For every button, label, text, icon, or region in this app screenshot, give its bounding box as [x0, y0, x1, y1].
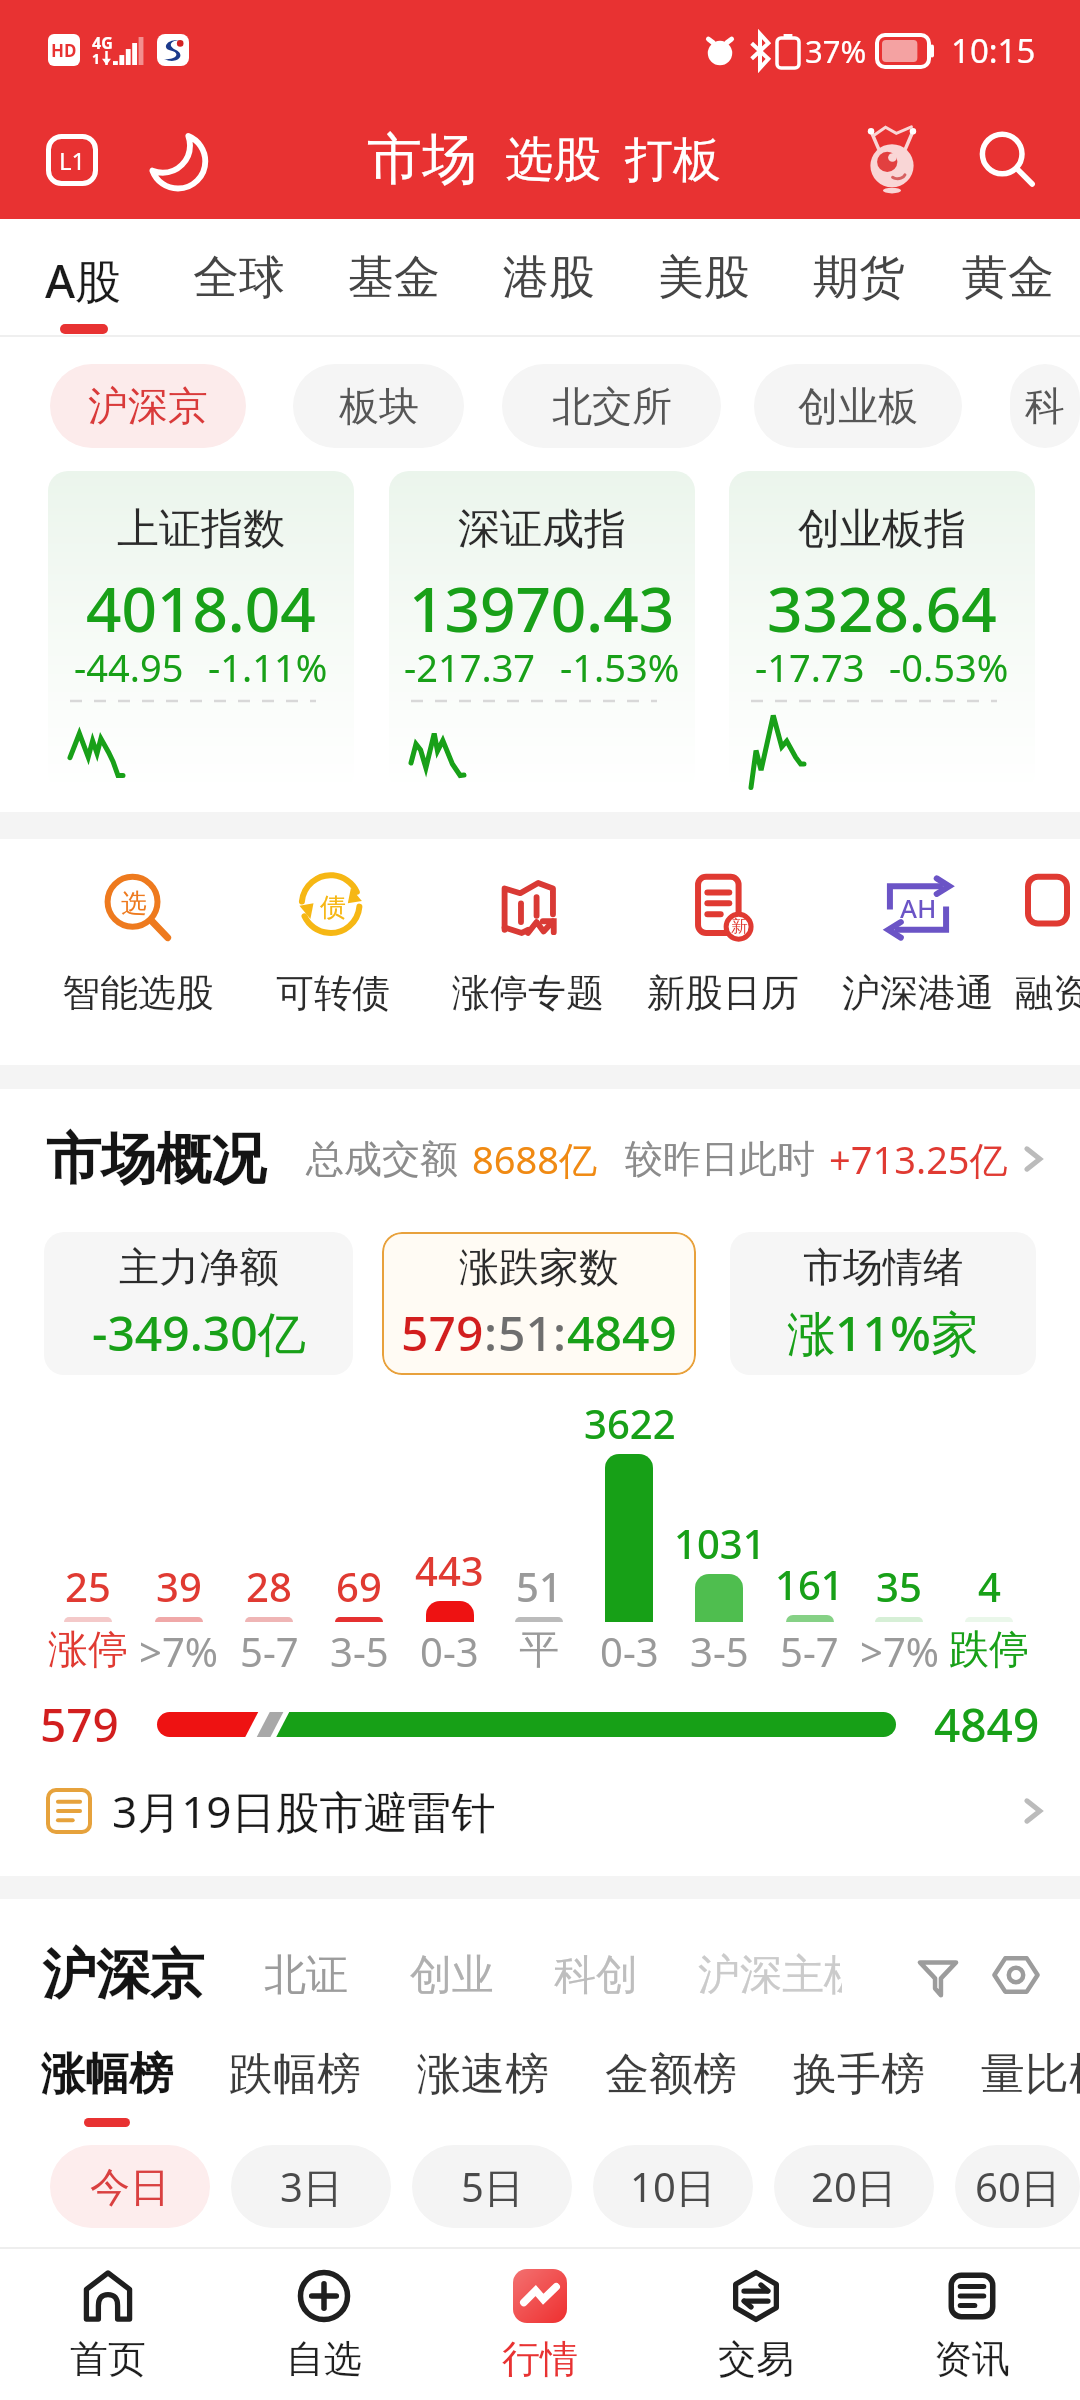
staticText: -217.37	[404, 641, 536, 693]
staticText: 涨幅榜	[41, 2047, 173, 2102]
button[interactable]: 沪深京	[50, 364, 246, 448]
button[interactable]: 60日	[955, 2145, 1080, 2228]
staticText: 量比榜	[981, 2047, 1080, 2102]
button[interactable]: 资讯	[864, 2249, 1080, 2400]
staticText: 可转债	[276, 969, 390, 1017]
button[interactable]: 北证	[264, 1949, 348, 2002]
button[interactable]: 美股	[626, 219, 781, 337]
staticText: 60日	[975, 2159, 1061, 2214]
staticText: 5-7	[780, 1624, 839, 1678]
staticText: >7%	[139, 1624, 218, 1678]
button[interactable]: 创业	[410, 1949, 494, 2002]
staticText: 较昨日此时	[625, 1135, 815, 1183]
button[interactable]: 沪深主板	[698, 1949, 842, 2002]
staticText: 0-3	[600, 1624, 659, 1678]
button[interactable]: Settings	[986, 1945, 1046, 2005]
button[interactable]: Search	[972, 125, 1042, 195]
button[interactable]: 交易	[648, 2249, 864, 2400]
button[interactable]: 涨幅榜	[41, 2047, 173, 2127]
button[interactable]: 跌幅榜	[229, 2047, 361, 2118]
staticText: 28	[246, 1559, 292, 1613]
button[interactable]: 打板	[625, 130, 721, 190]
button[interactable]: 换手榜	[793, 2047, 925, 2118]
button[interactable]: 今日	[50, 2145, 210, 2228]
button[interactable]: 主力净额	[44, 1232, 353, 1375]
staticText: 1	[92, 49, 101, 68]
staticText: -0.53%	[889, 641, 1009, 693]
button[interactable]: 涨速榜	[417, 2047, 549, 2118]
button[interactable]: 金额榜	[605, 2047, 737, 2118]
button[interactable]: 深证成指	[389, 471, 695, 791]
button[interactable]: AH	[820, 839, 1015, 1017]
button[interactable]: 全球	[161, 219, 316, 337]
button[interactable]: 首页	[0, 2249, 216, 2400]
button[interactable]: 行情	[432, 2249, 648, 2400]
button[interactable]: 沪深京	[42, 1941, 204, 2009]
button[interactable]: 基金	[316, 219, 471, 337]
staticText: L1	[59, 144, 86, 177]
staticText: 5-7	[240, 1624, 299, 1678]
staticText: 创业板	[798, 381, 918, 431]
staticText: +713.25亿	[829, 1133, 1008, 1185]
staticText: 涨停	[48, 1624, 128, 1674]
button[interactable]: 5日	[412, 2145, 572, 2228]
button[interactable]: 市场	[367, 125, 477, 194]
staticText: 10:15	[951, 28, 1036, 73]
button[interactable]: Night mode	[144, 126, 212, 194]
button[interactable]: 量比榜	[981, 2047, 1080, 2118]
button[interactable]: 港股	[471, 219, 626, 337]
button[interactable]: Filter	[908, 1945, 968, 2005]
button[interactable]: 黄金	[936, 219, 1080, 337]
button[interactable]: 选	[40, 839, 235, 1017]
staticText: 443	[415, 1543, 484, 1597]
button[interactable]: 3月19日股市避雷针	[46, 1761, 1050, 1861]
staticText: 20日	[811, 2159, 897, 2214]
staticText: 51	[516, 1559, 562, 1613]
staticText: -1.53%	[560, 641, 680, 693]
button[interactable]: 创业板指	[729, 471, 1035, 791]
button[interactable]: 新	[625, 839, 820, 1017]
staticText: 港股	[503, 249, 595, 307]
button[interactable]: 涨停专题	[430, 839, 625, 1017]
staticText: 平	[519, 1624, 559, 1674]
button[interactable]: 市场概况	[46, 1109, 1050, 1209]
staticText: 债	[320, 891, 346, 924]
staticText: -349.30亿	[92, 1300, 306, 1366]
button[interactable]: 涨跌家数	[382, 1232, 696, 1375]
button[interactable]: 期货	[781, 219, 936, 337]
button[interactable]: 20日	[774, 2145, 934, 2228]
button[interactable]: 10日	[593, 2145, 753, 2228]
button[interactable]: A股	[6, 219, 161, 337]
staticText: :	[553, 1300, 567, 1365]
staticText: 行情	[502, 2335, 578, 2383]
staticText: :	[484, 1300, 498, 1365]
staticText: 4849	[567, 1300, 677, 1365]
button[interactable]: 创业板	[754, 364, 962, 448]
button[interactable]: 板块	[293, 364, 464, 448]
staticText: 579	[401, 1300, 484, 1365]
staticText: 37%	[805, 30, 867, 72]
staticText: 基金	[348, 249, 440, 307]
staticText: A股	[45, 249, 122, 312]
staticText: -44.95	[74, 641, 184, 693]
staticText: 35	[876, 1559, 922, 1613]
staticText: 3-5	[690, 1624, 749, 1678]
button[interactable]: 市场情绪	[730, 1232, 1036, 1375]
staticText: 融资融券	[1015, 969, 1080, 1017]
button[interactable]: 自选	[216, 2249, 432, 2400]
staticText: 涨11%家	[787, 1300, 979, 1366]
staticText: 黄金	[962, 249, 1054, 307]
staticText: 市场概况	[46, 1125, 266, 1194]
button[interactable]: 北交所	[502, 364, 721, 448]
button[interactable]: 科	[1010, 364, 1080, 448]
button[interactable]: Level 1 quote	[44, 132, 100, 188]
button[interactable]: 融资融券	[1015, 839, 1080, 1017]
button[interactable]: 上证指数	[48, 471, 354, 791]
button[interactable]: 选股	[505, 130, 601, 190]
staticText: 涨跌家数	[459, 1242, 619, 1292]
button[interactable]: 3日	[231, 2145, 391, 2228]
staticText: 沪深主板	[698, 1949, 842, 2002]
button[interactable]: 科创	[554, 1949, 638, 2002]
button[interactable]: Assistant	[852, 120, 932, 200]
button[interactable]: 债	[235, 839, 430, 1017]
